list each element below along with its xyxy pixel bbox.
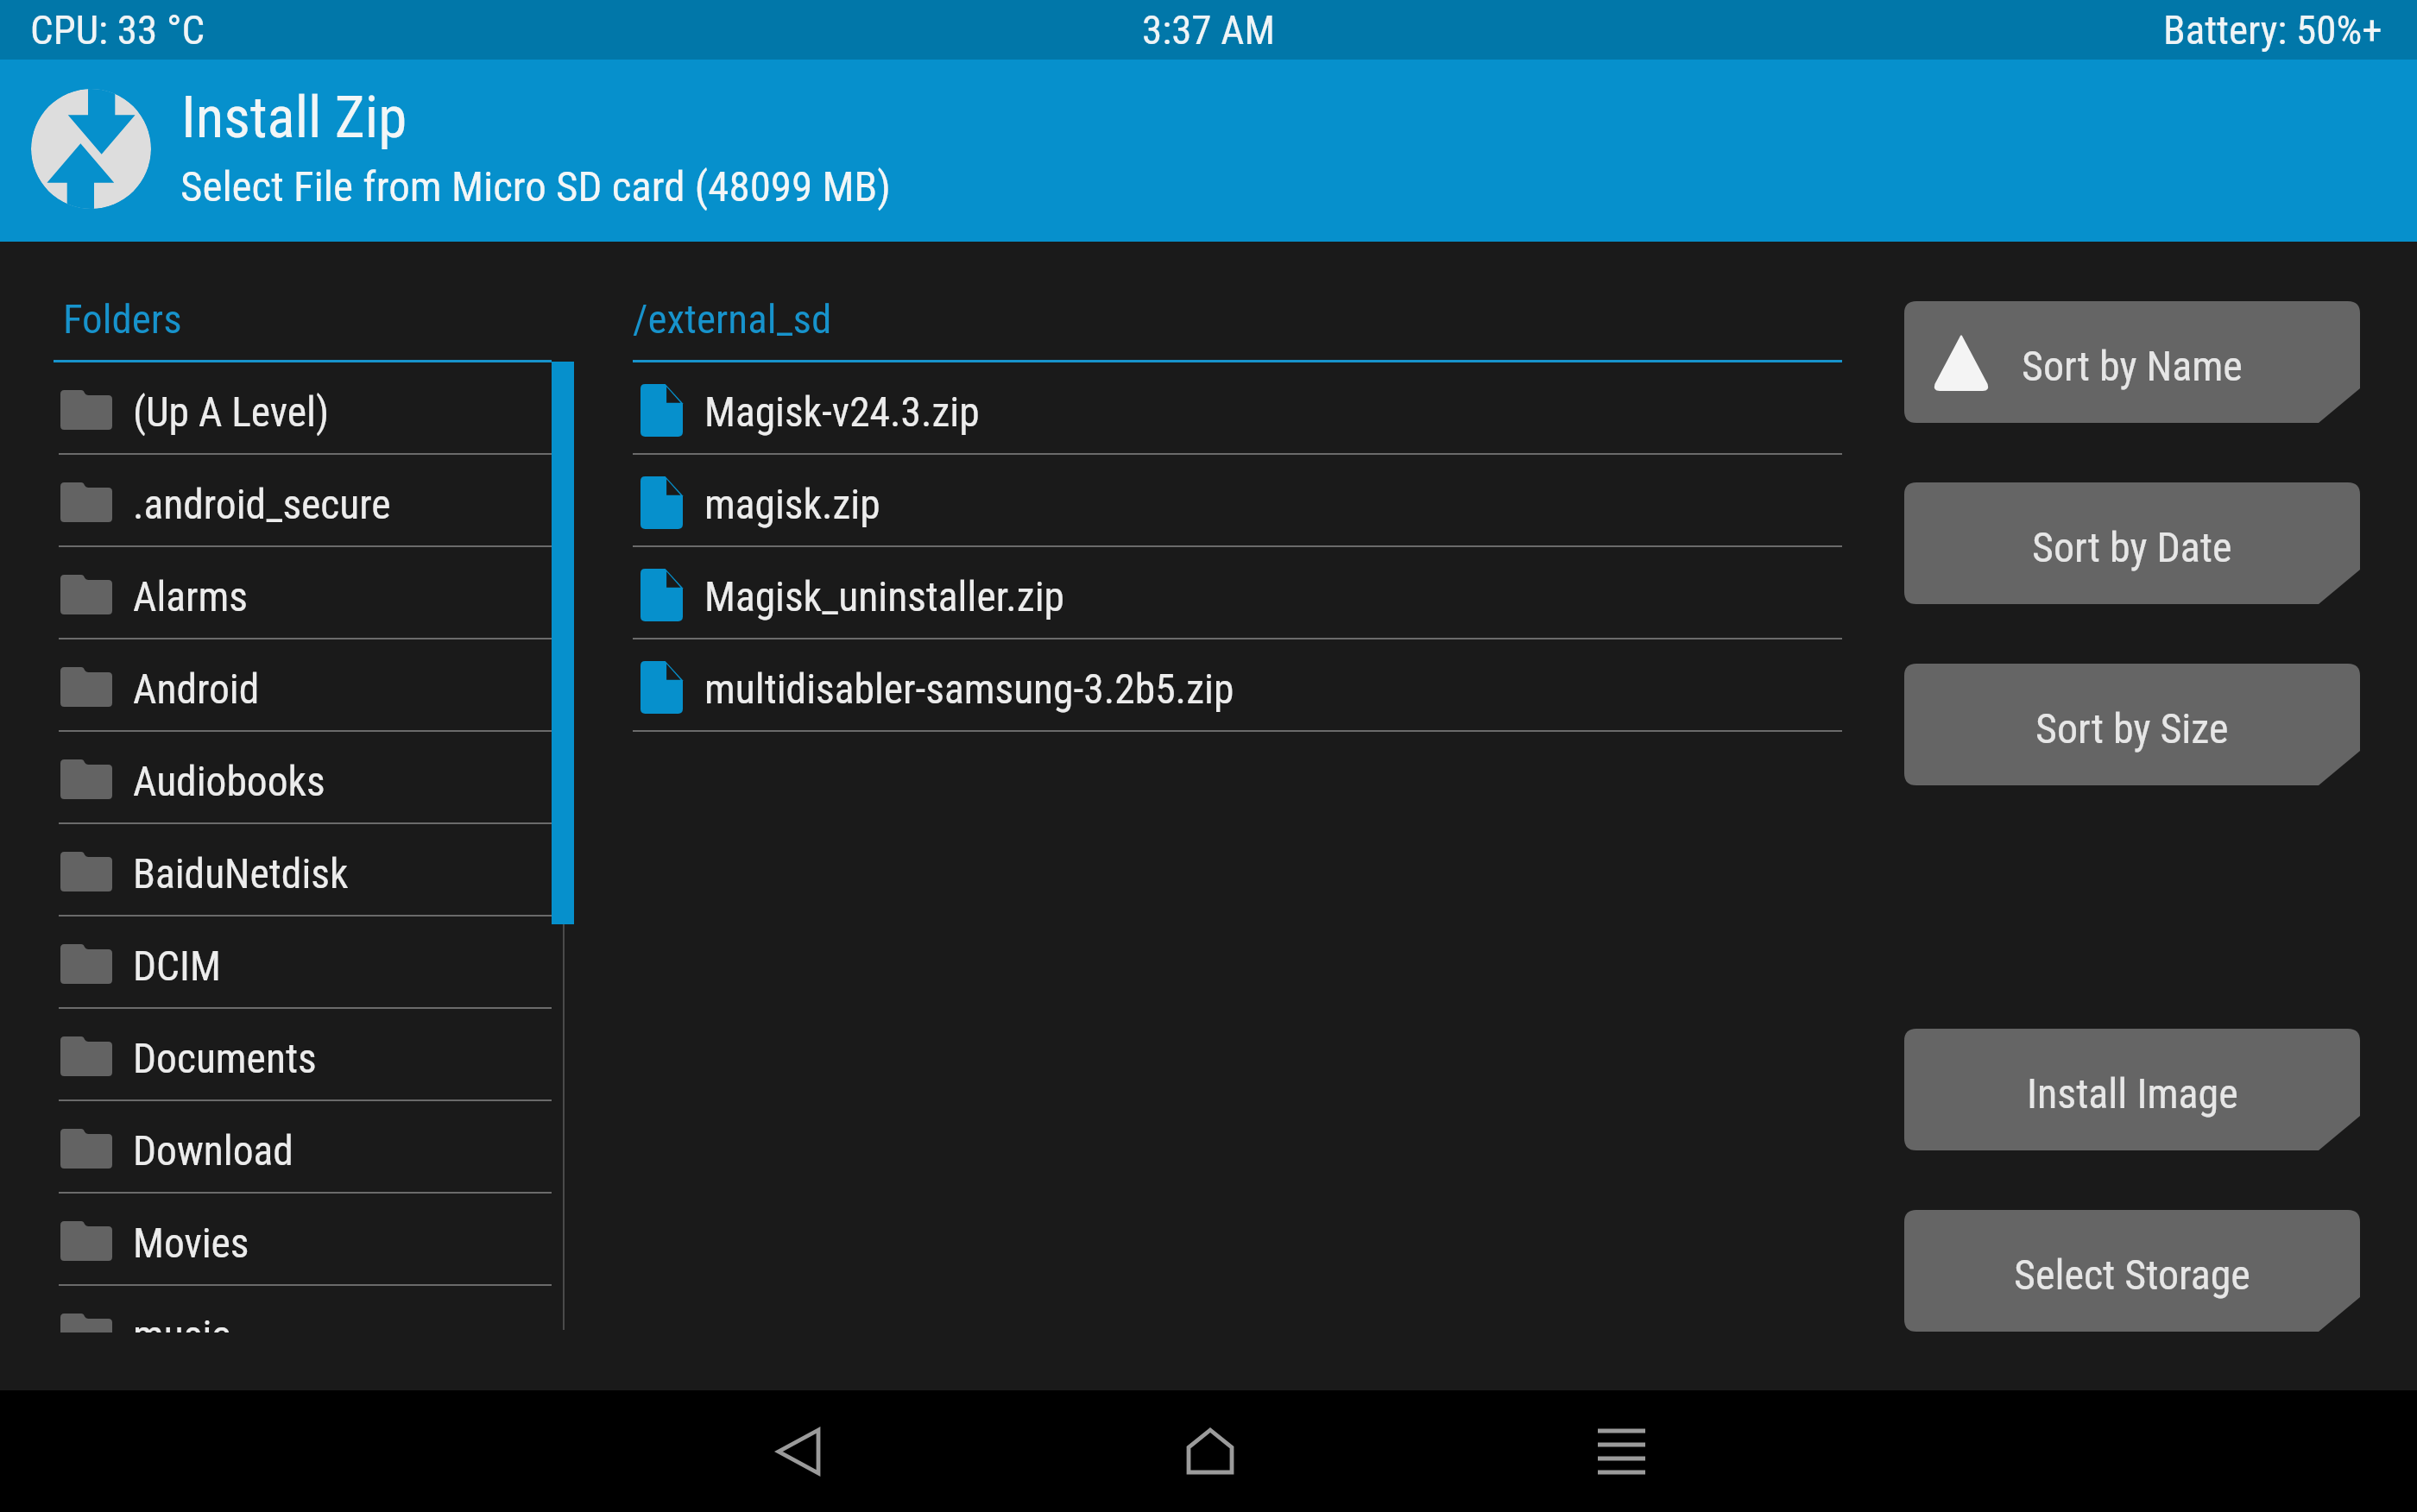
button[interactable]: Back xyxy=(592,1390,1004,1512)
button[interactable]: Sort by Name xyxy=(1904,301,2360,423)
button[interactable]: music xyxy=(54,1286,552,1332)
button[interactable]: magisk.zip xyxy=(633,455,1842,547)
staticText: DCIM xyxy=(133,942,221,991)
staticText: Android xyxy=(133,665,260,714)
staticText: Install Image xyxy=(2027,1069,2238,1118)
staticText: 3:37 AM xyxy=(1142,6,1275,54)
button[interactable]: BaiduNetdisk xyxy=(54,824,552,917)
staticText: Download xyxy=(133,1127,293,1175)
button[interactable]: Documents xyxy=(54,1009,552,1101)
button[interactable]: .android_secure xyxy=(54,455,552,547)
button[interactable]: Magisk_uninstaller.zip xyxy=(633,547,1842,639)
button[interactable]: Movies xyxy=(54,1194,552,1286)
button[interactable]: Sort by Size xyxy=(1904,664,2360,785)
staticText: Select File from Micro SD card (48099 MB… xyxy=(180,162,891,211)
staticText: /external_sd xyxy=(633,295,832,343)
button[interactable]: Home xyxy=(1004,1390,1416,1512)
staticText: .android_secure xyxy=(133,481,391,529)
staticText: CPU: 33 °C xyxy=(30,6,205,54)
button[interactable]: Alarms xyxy=(54,547,552,639)
staticText: Battery: 50%+ xyxy=(2163,6,2382,54)
staticText: music xyxy=(133,1312,231,1332)
button[interactable]: DCIM xyxy=(54,917,552,1009)
button[interactable]: Magisk-v24.3.zip xyxy=(633,362,1842,455)
button[interactable]: Menu xyxy=(1416,1390,1827,1512)
staticText: Magisk-v24.3.zip xyxy=(704,388,980,437)
staticText: BaiduNetdisk xyxy=(133,850,349,898)
button[interactable]: Audiobooks xyxy=(54,732,552,824)
staticText: Movies xyxy=(133,1219,249,1268)
staticText: multidisabler-samsung-3.2b5.zip xyxy=(704,665,1234,714)
staticText: Folders xyxy=(63,295,182,343)
staticText: Select Storage xyxy=(2014,1251,2250,1299)
staticText: Install Zip xyxy=(181,84,407,152)
button[interactable]: Download xyxy=(54,1101,552,1194)
button[interactable]: Select Storage xyxy=(1904,1210,2360,1332)
staticText: magisk.zip xyxy=(704,481,880,529)
button[interactable]: Android xyxy=(54,639,552,732)
staticText: Documents xyxy=(133,1035,317,1083)
staticText: Sort by Date xyxy=(2032,523,2232,571)
button[interactable]: multidisabler-samsung-3.2b5.zip xyxy=(633,639,1842,732)
staticText: (Up A Level) xyxy=(133,388,330,437)
button[interactable]: (Up A Level) xyxy=(54,362,552,455)
staticText: Audiobooks xyxy=(133,758,325,806)
button[interactable]: Sort by Date xyxy=(1904,482,2360,604)
staticText: Magisk_uninstaller.zip xyxy=(704,573,1064,621)
button[interactable]: Install Image xyxy=(1904,1029,2360,1150)
staticText: Alarms xyxy=(133,573,248,621)
staticText: Sort by Name xyxy=(2022,342,2243,390)
staticText: Sort by Size xyxy=(2035,704,2229,753)
